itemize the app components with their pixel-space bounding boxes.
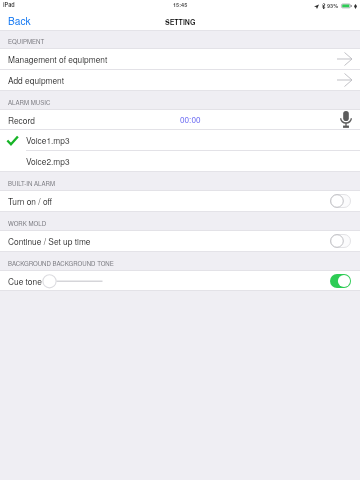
button[interactable]: Add equipment: [0, 70, 360, 90]
staticText: Management of equipment: [8, 53, 108, 65]
staticText: BACKGROUND BACKGROUND TONE: [8, 259, 114, 268]
button[interactable]: Management of equipment: [0, 49, 360, 69]
staticText: Continue / Set up time: [8, 235, 91, 247]
staticText: EQUIPMENT: [8, 37, 45, 46]
staticText: BUILT-IN ALARM: [8, 179, 56, 188]
other: Cue tone volume: [42, 271, 104, 290]
other: Continue or set up time: [330, 234, 351, 248]
other: Add equipment: [337, 73, 352, 87]
staticText: 00:00: [180, 114, 201, 126]
staticText: Cue tone: [8, 275, 42, 287]
button[interactable]: Voice1.mp3: [0, 130, 360, 150]
button[interactable]: Voice2.mp3: [0, 151, 360, 171]
button[interactable]: Cue tone: [0, 271, 360, 290]
staticText: 15:45: [173, 1, 188, 9]
staticText: Voice2.mp3: [26, 155, 70, 167]
other: Management of equipment: [337, 52, 352, 66]
staticText: Record: [8, 114, 35, 126]
button[interactable]: Continue / Set up time: [0, 231, 360, 251]
staticText: Add equipment: [8, 74, 65, 86]
button[interactable]: Back: [0, 13, 43, 30]
staticText: Back: [8, 13, 31, 26]
staticText: iPad: [3, 1, 15, 9]
staticText: ALARM MUSIC: [8, 98, 51, 107]
staticText: SETTING: [165, 17, 196, 27]
other: Cue tone on or off: [330, 274, 351, 288]
button[interactable]: Turn on / off: [0, 191, 360, 211]
staticText: WORK MOLD: [8, 219, 47, 228]
staticText: Turn on / off: [8, 195, 53, 207]
other: Record audio: [340, 111, 352, 128]
staticText: 93%: [327, 2, 339, 10]
other: Turn built-in alarm on or off: [330, 194, 351, 208]
staticText: Voice1.mp3: [26, 134, 70, 146]
button[interactable]: Record: [0, 110, 360, 129]
